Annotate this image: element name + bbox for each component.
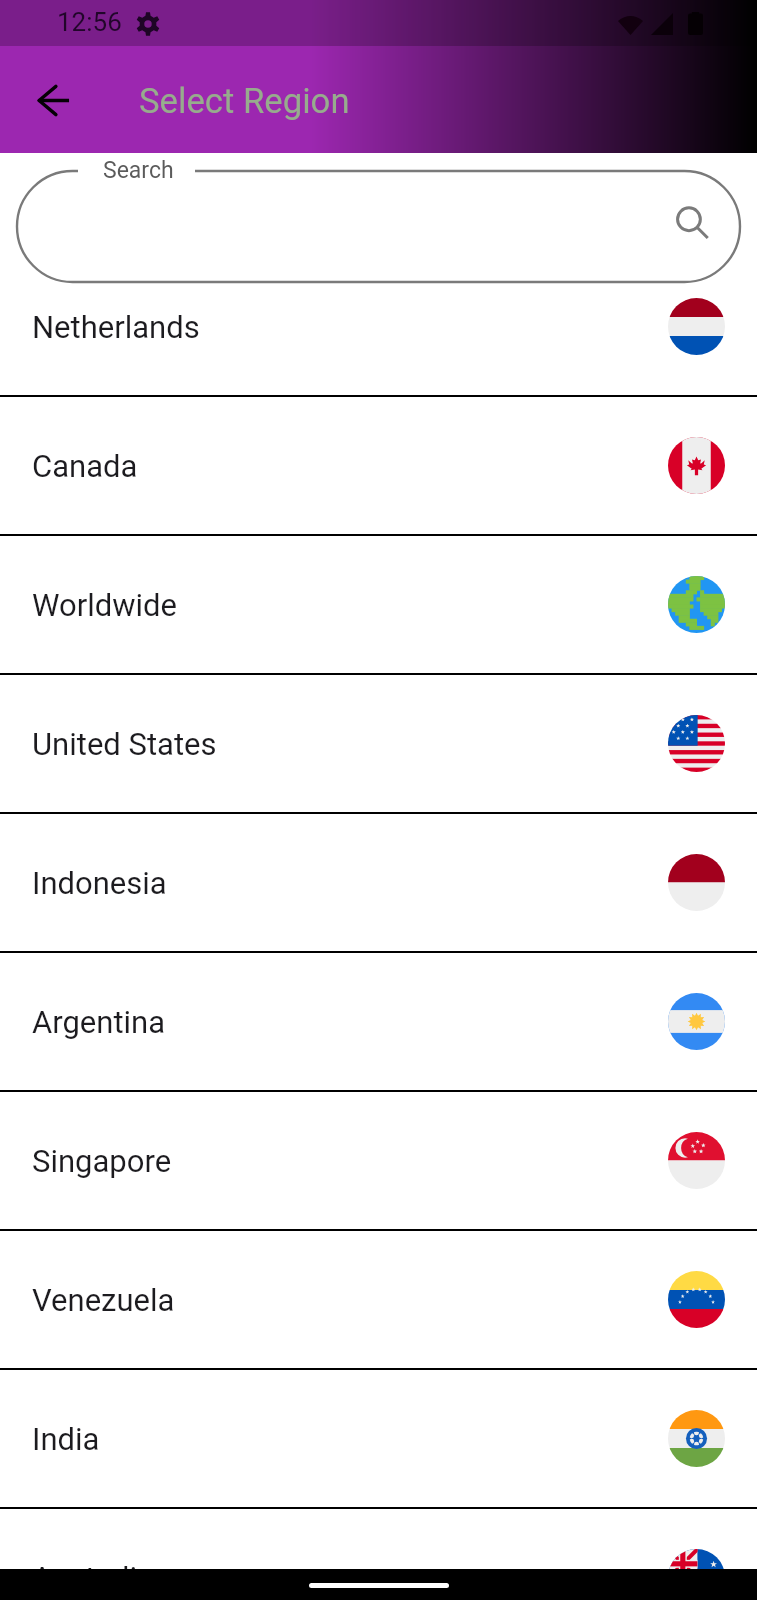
- button[interactable]: Netherlands: [0, 258, 757, 397]
- staticText: United States: [32, 726, 217, 762]
- staticText: Canada: [32, 448, 138, 484]
- staticText: 12:56: [57, 7, 122, 37]
- staticText: Worldwide: [32, 587, 177, 623]
- staticText: Argentina: [32, 1004, 166, 1040]
- staticText: India: [32, 1421, 100, 1457]
- button[interactable]: Indonesia: [0, 814, 757, 953]
- staticText: Singapore: [32, 1143, 172, 1179]
- button[interactable]: Back: [24, 70, 84, 130]
- button[interactable]: India: [0, 1370, 757, 1509]
- button[interactable]: Worldwide: [0, 536, 757, 675]
- staticText: Netherlands: [32, 309, 200, 345]
- staticText: Venezuela: [32, 1282, 175, 1318]
- button[interactable]: United States: [0, 675, 757, 814]
- button[interactable]: Canada: [0, 397, 757, 536]
- button[interactable]: Singapore: [0, 1092, 757, 1231]
- button[interactable]: Venezuela: [0, 1231, 757, 1370]
- button[interactable]: Australia: [0, 1509, 757, 1569]
- staticText: Indonesia: [32, 865, 167, 901]
- staticText: Australia: [32, 1560, 154, 1569]
- button[interactable]: Argentina: [0, 953, 757, 1092]
- staticText: Search: [103, 157, 174, 184]
- staticText: Select Region: [139, 81, 350, 122]
